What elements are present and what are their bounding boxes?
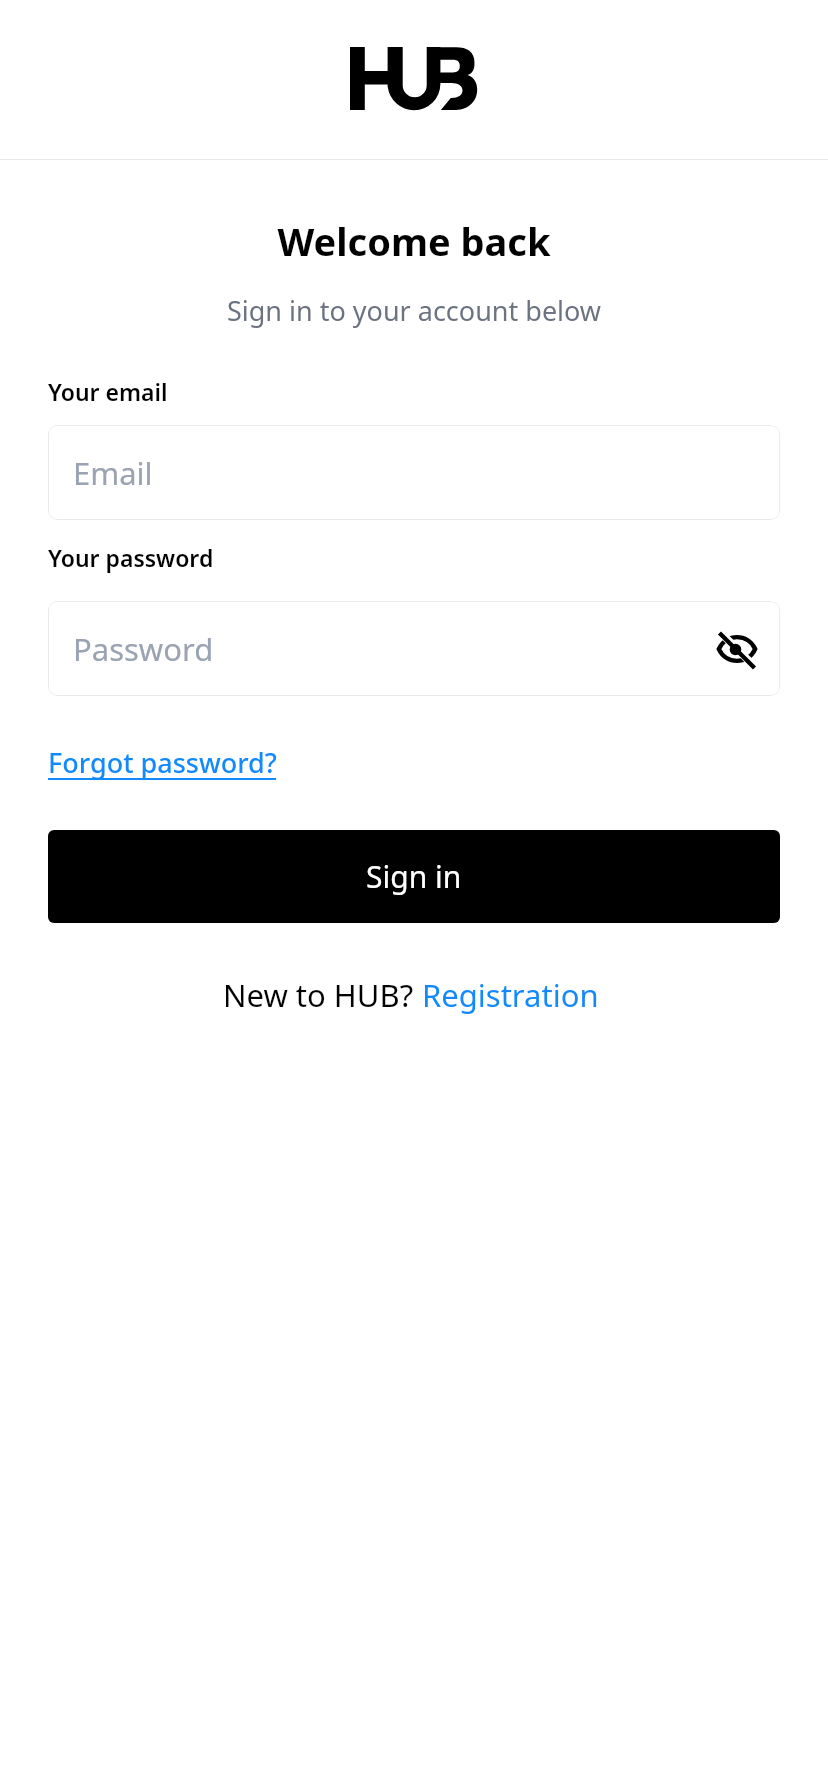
staticText: Your password [48,542,214,573]
button[interactable]: Email [48,425,780,520]
staticText: New to HUB? [223,974,422,1016]
staticText: Forgot password? [48,744,277,781]
staticText: Sign in [366,856,462,897]
staticText: Password [73,628,214,670]
button[interactable]: Password [48,601,780,696]
staticText: Email [73,452,153,494]
button[interactable]: Sign in [48,830,780,923]
button[interactable]: Show password [701,601,773,696]
button[interactable]: Registration [422,974,599,1016]
button[interactable]: Forgot password? [48,744,277,781]
staticText: Registration [422,974,599,1016]
staticText: Welcome back [0,215,828,267]
staticText: Your email [48,376,168,407]
staticText: Sign in to your account below [0,292,828,329]
